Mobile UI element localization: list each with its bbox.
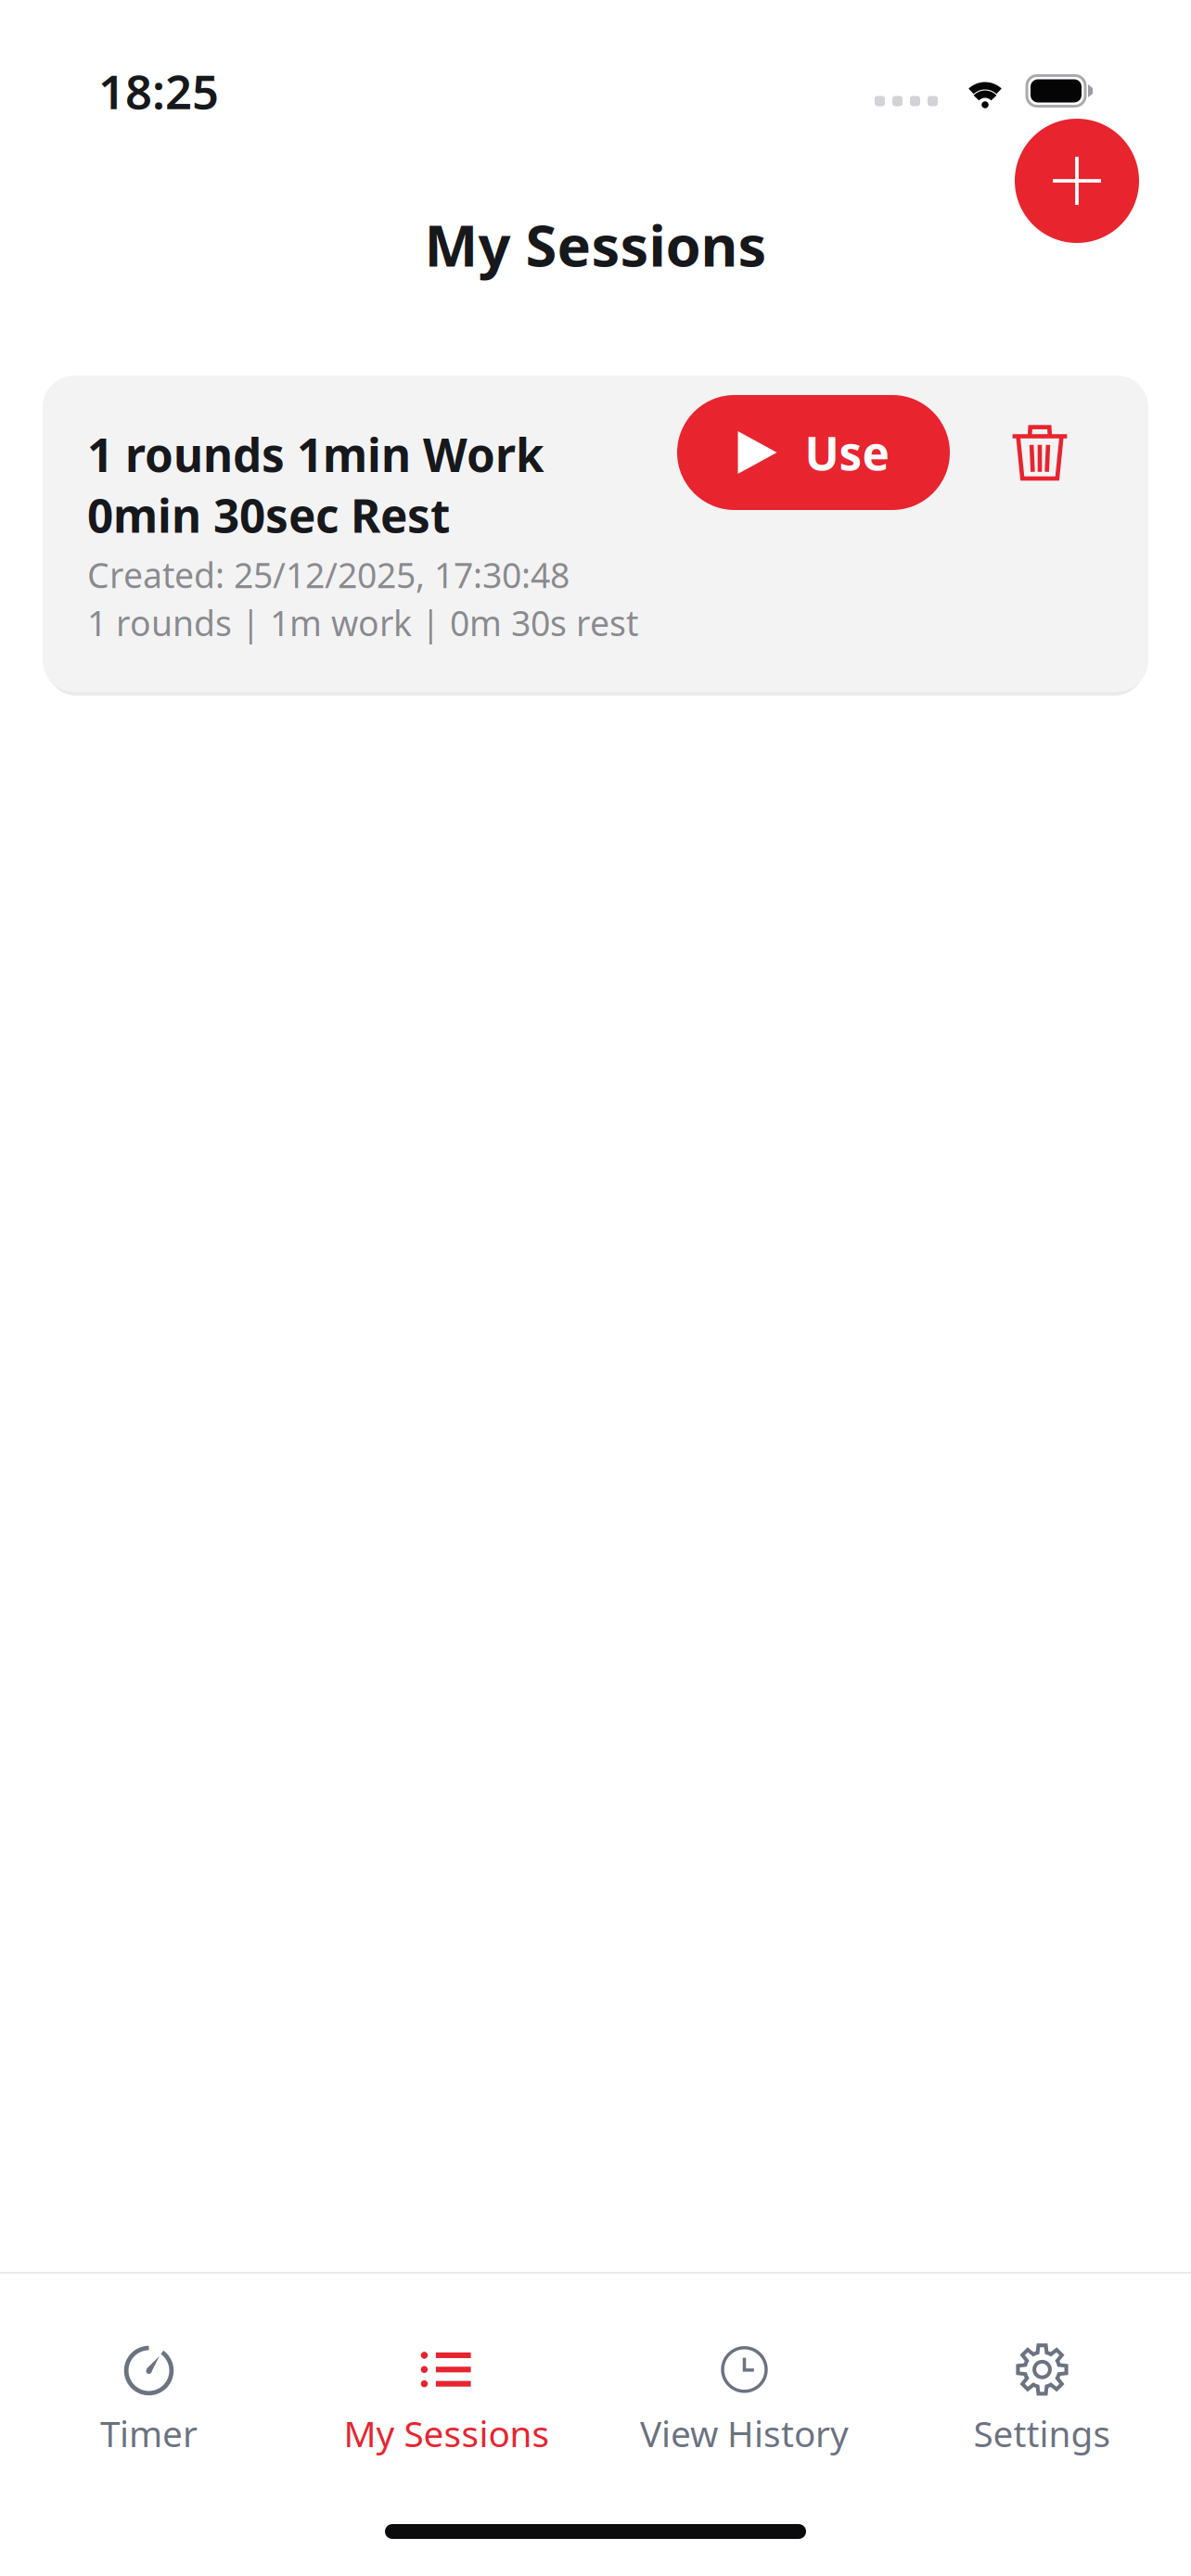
button[interactable]: Add session bbox=[1015, 119, 1139, 243]
button[interactable]: Timer bbox=[0, 2326, 298, 2474]
staticText: 0min 30sec Rest bbox=[87, 485, 450, 545]
button[interactable]: View History bbox=[595, 2326, 893, 2474]
staticText: My Sessions bbox=[344, 2409, 550, 2457]
staticText: 1 rounds 1min Work bbox=[87, 424, 544, 485]
button[interactable]: My Sessions bbox=[298, 2326, 595, 2474]
staticText: Timer bbox=[100, 2409, 198, 2457]
staticText: View History bbox=[640, 2409, 849, 2457]
staticText: Created: 25/12/2025, 17:30:48 bbox=[87, 552, 570, 598]
staticText: 18:25 bbox=[98, 60, 219, 122]
button[interactable]: Settings bbox=[893, 2326, 1191, 2474]
button[interactable]: Use bbox=[677, 395, 950, 510]
staticText: Settings bbox=[973, 2409, 1111, 2457]
staticText: 1 rounds | 1m work | 0m 30s rest bbox=[87, 600, 638, 646]
button[interactable]: Delete session bbox=[1009, 422, 1070, 483]
staticText: My Sessions bbox=[424, 207, 767, 282]
staticText: Use bbox=[805, 422, 889, 483]
